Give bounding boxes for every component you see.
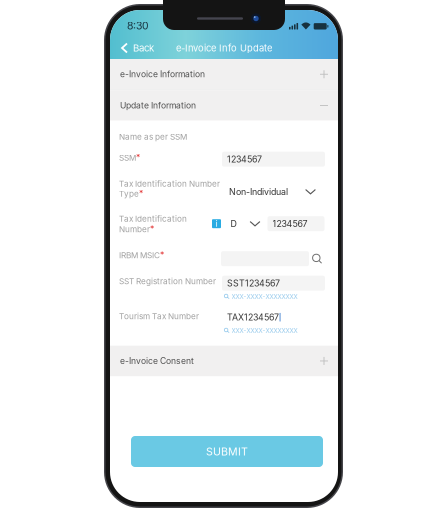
staticText: XXX-XXXX-XXXXXXXX xyxy=(232,327,298,334)
staticText: 1234567 xyxy=(227,154,262,164)
staticText: Back xyxy=(133,42,154,54)
staticText: SUBMIT xyxy=(206,445,248,458)
staticText: * xyxy=(136,152,140,163)
staticText: SSM xyxy=(119,153,136,163)
staticText: Non-Individual xyxy=(229,186,288,197)
staticText: TAX1234567 xyxy=(227,312,279,322)
staticText: 1234567 xyxy=(272,218,307,229)
staticText: Update Information xyxy=(120,100,196,111)
staticText: i xyxy=(215,218,217,229)
staticText: Tourism Tax Number xyxy=(119,311,199,321)
staticText: * xyxy=(139,188,143,199)
staticText: Number xyxy=(119,224,150,234)
button[interactable]: Non-Individual xyxy=(222,184,325,200)
button[interactable]: e-Invoice Information xyxy=(110,59,338,89)
staticText: * xyxy=(150,224,154,234)
staticText: XXX-XXXX-XXXXXXXX xyxy=(232,293,298,300)
staticText: * xyxy=(160,250,164,260)
staticText: IRBM MSIC xyxy=(119,250,160,260)
staticText: Tax Identification xyxy=(119,214,187,224)
button[interactable]: Update Information xyxy=(110,90,338,121)
staticText: SST Registration Number xyxy=(119,276,216,286)
button[interactable]: e-Invoice Consent xyxy=(110,346,338,376)
button[interactable]: SUBMIT xyxy=(131,436,323,467)
staticText: e-Invoice Consent xyxy=(120,356,194,366)
staticText: Name as per SSM xyxy=(119,132,187,142)
staticText: e-Invoice Information xyxy=(120,69,205,79)
staticText: Tax Identification Number xyxy=(119,179,220,189)
staticText: e-Invoice Info Update xyxy=(176,42,272,54)
button[interactable]: Back xyxy=(114,38,161,58)
staticText: SST1234567 xyxy=(227,278,280,288)
staticText: D xyxy=(230,218,236,229)
staticText: Type xyxy=(119,189,139,199)
button[interactable]: Search xyxy=(309,254,322,264)
staticText: 8:30 xyxy=(127,19,149,32)
